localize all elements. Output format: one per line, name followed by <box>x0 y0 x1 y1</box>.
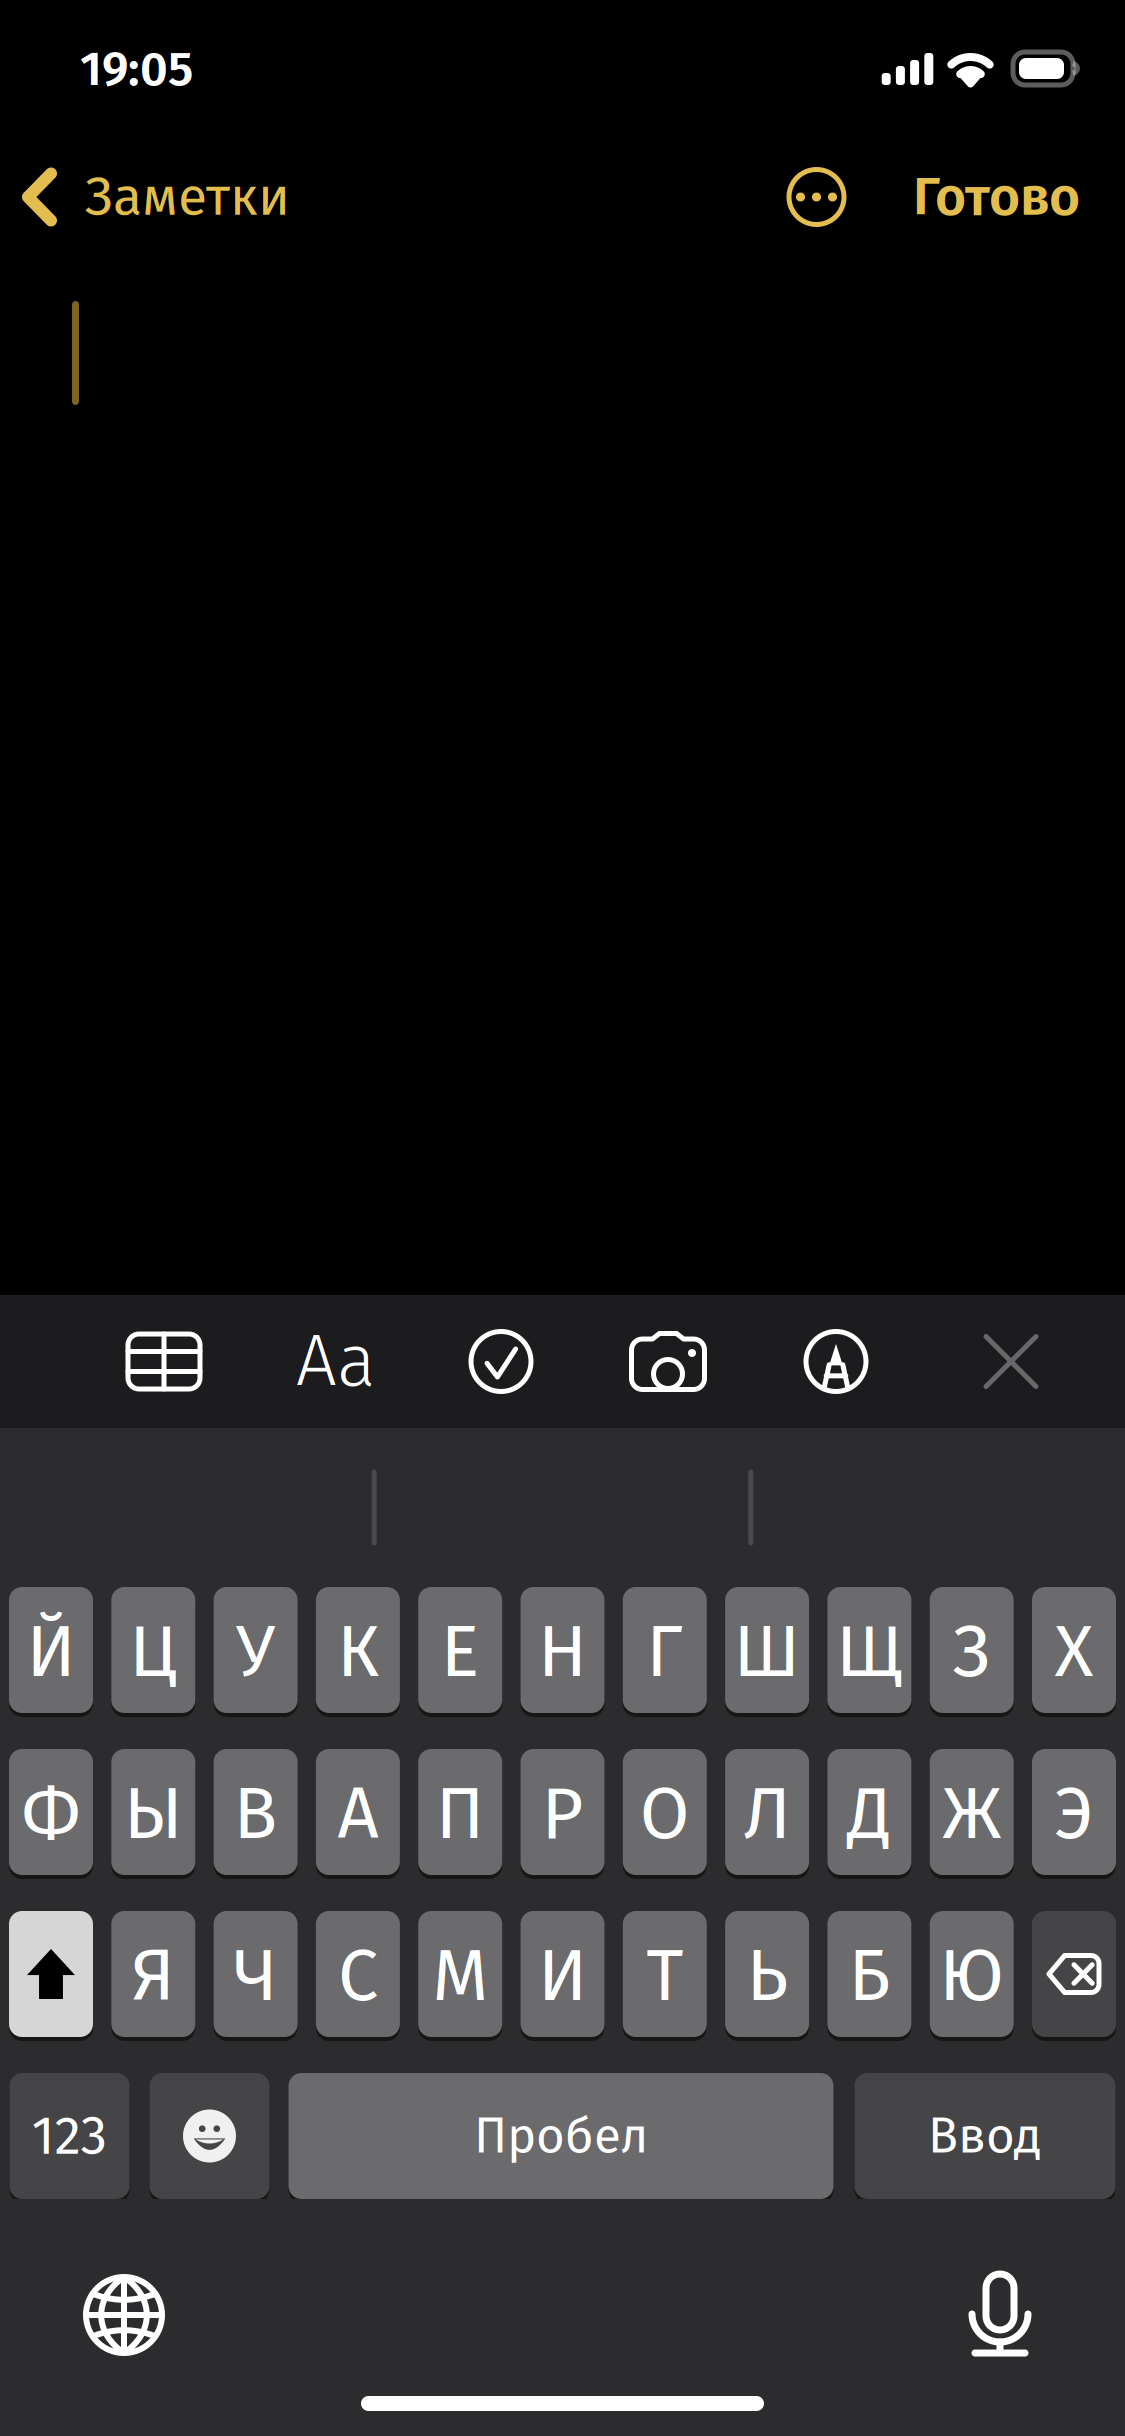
staticText: Б <box>848 1933 890 2019</box>
button[interactable]: Б <box>827 1911 911 2037</box>
button[interactable]: Й <box>9 1587 93 1713</box>
staticText: К <box>337 1609 379 1695</box>
staticText: Ц <box>129 1609 177 1695</box>
staticText: М <box>432 1933 488 2019</box>
button[interactable]: И <box>520 1911 604 2037</box>
button[interactable]: Формат текста <box>271 1295 401 1428</box>
staticText: Э <box>1054 1771 1093 1857</box>
staticText: Готово <box>913 165 1080 229</box>
staticText: Ь <box>747 1933 788 2019</box>
staticText: Ж <box>942 1771 1001 1857</box>
button[interactable]: Л <box>725 1749 809 1875</box>
staticText: Заметки <box>85 165 290 229</box>
button[interactable]: Разметка <box>771 1295 901 1428</box>
button[interactable]: Камера <box>603 1295 733 1428</box>
staticText: В <box>234 1771 278 1857</box>
staticText: Ш <box>734 1609 801 1695</box>
button[interactable]: 123 <box>9 2073 129 2199</box>
staticText: Х <box>1054 1609 1093 1695</box>
staticText: Р <box>541 1771 583 1857</box>
staticText: О <box>640 1771 690 1857</box>
staticText: Щ <box>836 1609 903 1695</box>
button[interactable]: А <box>316 1749 400 1875</box>
button[interactable]: Готово <box>875 130 1125 264</box>
button[interactable]: Ввод <box>854 2073 1115 2199</box>
staticText: П <box>436 1771 485 1857</box>
button[interactable]: З <box>930 1587 1014 1713</box>
button[interactable]: Ч <box>214 1911 298 2037</box>
staticText: Д <box>847 1771 891 1857</box>
button[interactable]: Эмодзи <box>149 2073 269 2199</box>
staticText: Н <box>538 1609 587 1695</box>
button[interactable]: Ж <box>930 1749 1014 1875</box>
staticText: Е <box>441 1609 480 1695</box>
button[interactable]: Пробел <box>288 2073 833 2199</box>
staticText: 19:05 <box>80 40 193 98</box>
button[interactable]: Н <box>520 1587 604 1713</box>
button[interactable]: Р <box>520 1749 604 1875</box>
staticText: У <box>236 1609 275 1695</box>
button[interactable]: Таблица <box>99 1295 229 1428</box>
button[interactable]: Я <box>111 1911 195 2037</box>
button[interactable]: Закрыть клавиатуру <box>946 1295 1076 1428</box>
button[interactable]: Ы <box>111 1749 195 1875</box>
button[interactable]: Щ <box>827 1587 911 1713</box>
button[interactable]: Ш <box>725 1587 809 1713</box>
staticText: Л <box>744 1771 791 1857</box>
button[interactable]: Е <box>418 1587 502 1713</box>
staticText: Ввод <box>928 2106 1042 2166</box>
button[interactable]: Верхний регистр <box>9 1911 93 2037</box>
button[interactable]: К <box>316 1587 400 1713</box>
staticText: Й <box>26 1609 75 1695</box>
staticText: И <box>538 1933 587 2019</box>
staticText: Ч <box>234 1933 278 2019</box>
button[interactable]: О <box>623 1749 707 1875</box>
staticText: Я <box>131 1933 175 2019</box>
staticText: Г <box>646 1609 683 1695</box>
button[interactable]: М <box>418 1911 502 2037</box>
button[interactable]: Ещё <box>758 130 875 264</box>
button[interactable]: В <box>214 1749 298 1875</box>
button[interactable]: Заметки <box>0 130 318 264</box>
staticText: З <box>953 1609 991 1695</box>
button[interactable]: У <box>214 1587 298 1713</box>
button[interactable]: Э <box>1032 1749 1116 1875</box>
staticText: Ю <box>939 1933 1004 2019</box>
staticText: Т <box>646 1933 683 2019</box>
staticText: С <box>338 1933 378 2019</box>
button[interactable]: Г <box>623 1587 707 1713</box>
button[interactable]: Ф <box>9 1749 93 1875</box>
button[interactable]: Т <box>623 1911 707 2037</box>
staticText: Aa <box>296 1318 376 1405</box>
staticText: Ы <box>124 1771 183 1857</box>
button[interactable]: Список <box>436 1295 566 1428</box>
button[interactable]: П <box>418 1749 502 1875</box>
staticText: Пробел <box>474 2106 648 2166</box>
staticText: А <box>337 1771 378 1857</box>
button[interactable]: Сменить язык ввода <box>83 2274 165 2356</box>
staticText: Ф <box>21 1771 80 1857</box>
button[interactable]: Ь <box>725 1911 809 2037</box>
button[interactable]: С <box>316 1911 400 2037</box>
button[interactable]: Х <box>1032 1587 1116 1713</box>
button[interactable]: Ю <box>930 1911 1014 2037</box>
button[interactable]: Д <box>827 1749 911 1875</box>
button[interactable]: Диктовка <box>971 2274 1029 2356</box>
button[interactable]: Удалить <box>1032 1911 1116 2037</box>
staticText: 123 <box>31 2104 107 2168</box>
button[interactable]: Ц <box>111 1587 195 1713</box>
